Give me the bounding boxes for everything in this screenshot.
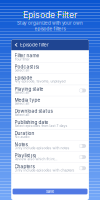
staticText: Select all [15,102,30,106]
staticText: Review also which fit int... [15,157,58,161]
button[interactable]: Filter name [11,52,89,63]
button[interactable]: Download status [11,107,89,118]
staticText: Playlist(s) [15,153,37,158]
staticText: Media type [15,97,41,103]
staticText: Download status [15,108,53,114]
staticText: episode filters [34,26,65,31]
staticText: Stay organized with your own [17,20,83,26]
staticText: Your filter [15,57,30,61]
staticText: Select all [15,113,30,117]
staticText: Chapters [15,164,35,169]
staticText: Select all [15,90,30,94]
staticText: Select episodes from last 7 days [15,124,68,128]
staticText: Only include episodes with notes [15,146,70,150]
staticText: Episode [15,75,33,81]
button[interactable]: Episode [11,74,89,85]
button[interactable]: Duration [11,129,89,141]
button[interactable]: Back [14,43,17,47]
staticText: Playing state [15,86,44,92]
staticText: Any episode, favorite, unplayed [15,79,66,83]
staticText: Publishing date [15,119,49,125]
button[interactable]: Podcast(s) [11,63,89,74]
staticText: Save [46,189,54,194]
staticText: Notes [15,142,28,147]
staticText: Episode filter [20,42,49,48]
staticText: Only include episodes with chapters [15,168,75,172]
button[interactable]: Notes [11,141,89,152]
button[interactable]: Save [13,189,87,194]
button[interactable]: Media type [11,96,89,107]
button[interactable]: Playing state [11,85,89,96]
staticText: No audio [15,135,30,139]
button[interactable]: Playlist(s) [11,152,89,163]
staticText: Filter name [15,53,40,58]
staticText: Select all [15,68,30,72]
button[interactable]: Publishing date [11,118,89,129]
button[interactable]: Chapters [11,163,89,174]
staticText: Podcast(s) [15,64,40,70]
staticText: Episode Filter [23,9,77,20]
staticText: Duration [15,131,35,136]
